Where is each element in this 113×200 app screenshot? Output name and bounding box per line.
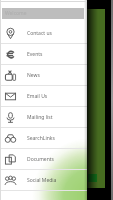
button[interactable]: Social Media <box>0 170 87 191</box>
staticText: Social Media <box>27 177 57 184</box>
button[interactable]: Contact us <box>0 23 87 44</box>
staticText: Events <box>27 51 43 58</box>
staticText: Welcome <box>5 10 27 17</box>
button[interactable] <box>88 174 97 182</box>
button[interactable]: Documents <box>0 149 87 170</box>
staticText: Documents <box>27 156 54 163</box>
button[interactable]: Email Us <box>0 86 87 107</box>
staticText: SearchLinks <box>27 135 55 142</box>
staticText: News <box>27 72 40 79</box>
button[interactable]: SearchLinks <box>0 128 87 149</box>
button[interactable]: Events <box>0 44 87 65</box>
staticText: Mailing list <box>27 114 53 121</box>
staticText: Email Us <box>27 93 48 100</box>
staticText: Contact us <box>27 30 52 37</box>
button[interactable]: Mailing list <box>0 107 87 128</box>
button[interactable]: News <box>0 65 87 86</box>
